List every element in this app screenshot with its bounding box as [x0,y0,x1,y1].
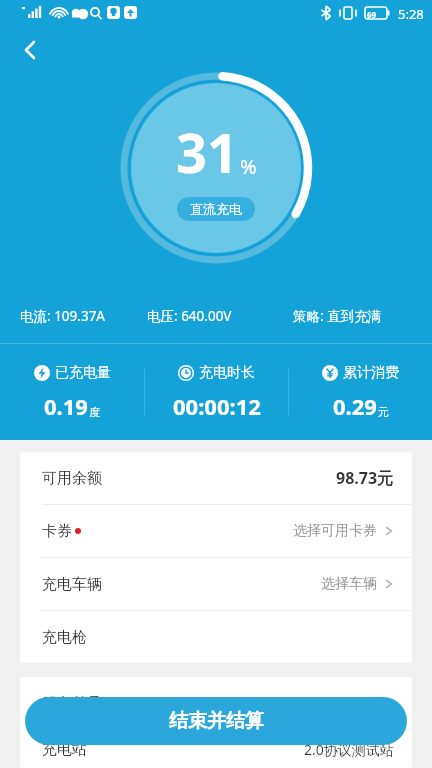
staticText: 已充电量 [55,364,111,382]
staticText: S22080263552410315 [250,694,394,713]
staticText: 可用余额 [42,469,102,488]
staticText: 度 [89,405,100,419]
button[interactable]: 结束并结算 [25,697,407,745]
staticText: 选择可用卡券 [293,522,377,540]
staticText: 31 [176,115,238,189]
staticText: 5:28 [398,5,424,23]
staticText: 充电枪 [42,628,87,647]
staticText: 充电车辆 [42,575,102,594]
staticText: 98.73元 [336,467,394,489]
staticText: 00:00:12 [173,391,261,421]
staticText: 卡券 [42,522,72,541]
staticText: 2.0协议测试站 [304,740,394,759]
staticText: 电压: 640.00V [147,307,232,325]
staticText: % [240,153,257,180]
staticText: 直流充电 [190,201,242,217]
staticText: 服务单号 [42,694,102,713]
staticText: 充电时长 [199,364,255,382]
staticText: 结束并结算 [169,709,264,733]
staticText: 0.29 [333,391,377,421]
staticText: 累计消费 [343,364,399,382]
staticText: 充电站 [42,740,87,759]
button[interactable]: 充电车辆 [20,558,412,610]
staticText: 69 [367,9,377,20]
button[interactable]: 卡券 [20,505,412,557]
staticText: 策略: 直到充满 [293,307,382,325]
staticText: 选择车辆 [321,575,377,593]
button[interactable]: Back [8,28,52,72]
staticText: 元 [378,405,389,419]
staticText: 0.19 [44,391,88,421]
staticText: 电流: 109.37A [20,307,105,325]
